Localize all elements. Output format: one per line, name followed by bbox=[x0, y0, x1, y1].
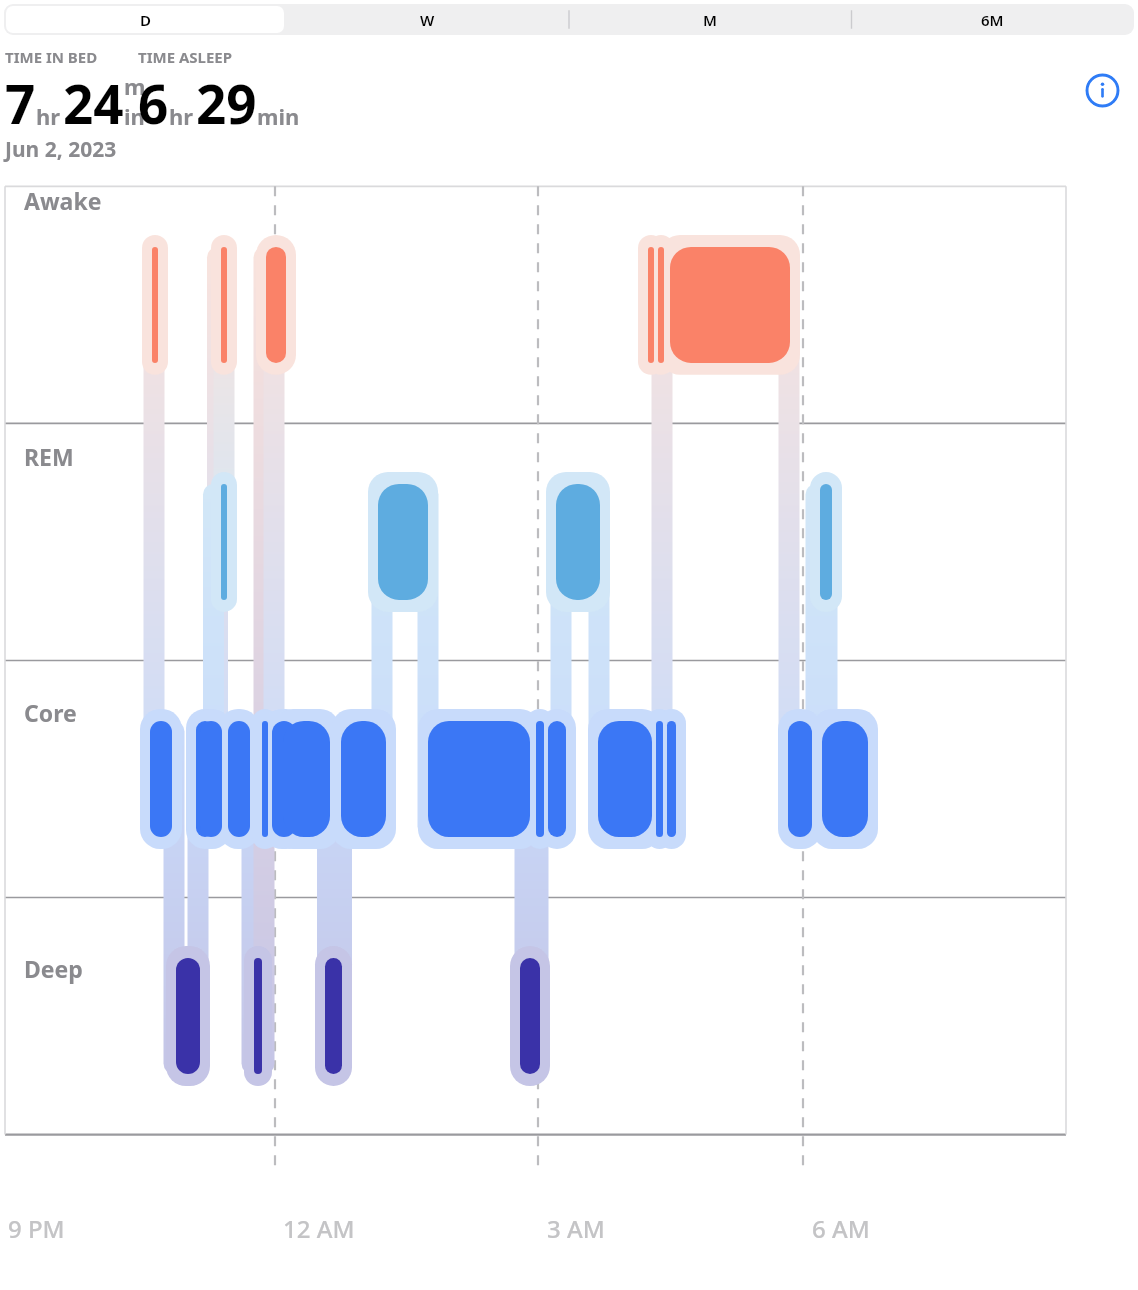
staticText: min bbox=[257, 101, 300, 131]
staticText: D bbox=[140, 10, 151, 30]
staticText: 6 AM bbox=[812, 1212, 870, 1245]
staticText: Deep bbox=[24, 953, 83, 984]
staticText: 3 AM bbox=[547, 1212, 605, 1245]
button[interactable]: Information bbox=[1085, 73, 1120, 108]
staticText: 6M bbox=[981, 10, 1004, 30]
button[interactable]: 6M bbox=[853, 6, 1132, 33]
button[interactable]: Sleep stages hypnogram bbox=[0, 178, 1138, 1290]
staticText: Awake bbox=[24, 185, 102, 216]
staticText: 6 bbox=[138, 67, 169, 139]
staticText: 24 bbox=[63, 67, 124, 139]
staticText: 29 bbox=[196, 67, 257, 139]
staticText: 9 PM bbox=[8, 1212, 65, 1245]
button[interactable]: D bbox=[6, 6, 284, 33]
button[interactable]: M bbox=[570, 6, 849, 33]
staticText: TIME ASLEEP bbox=[138, 47, 233, 67]
staticText: 7 bbox=[5, 67, 36, 139]
staticText: Jun 2, 2023 bbox=[5, 135, 117, 164]
staticText: TIME IN BED bbox=[5, 47, 98, 67]
button[interactable]: W bbox=[288, 6, 566, 33]
staticText: hr bbox=[169, 101, 194, 131]
staticText: min bbox=[124, 71, 138, 131]
staticText: Core bbox=[24, 697, 77, 728]
staticText: M bbox=[703, 10, 717, 30]
staticText: REM bbox=[24, 441, 74, 472]
staticText: W bbox=[420, 10, 435, 30]
staticText: hr bbox=[36, 101, 61, 131]
staticText: 12 AM bbox=[283, 1212, 355, 1245]
